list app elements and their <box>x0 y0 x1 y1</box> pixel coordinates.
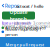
button[interactable]: Merge pull request <box>0 37 50 47</box>
staticText: into main · 3 commits <box>14 20 50 25</box>
staticText: Repos <box>5 2 20 9</box>
button[interactable]: Update branch <box>2 11 35 19</box>
staticText: Merge pull request <box>5 42 44 47</box>
staticText: Update branch <box>9 8 27 23</box>
button[interactable]: All checks have passed <box>1 26 47 30</box>
staticText: octocat / hello <box>16 4 43 9</box>
button[interactable]: Repos <box>2 3 20 9</box>
staticText: Opened 2 days ago by octocat <box>1 23 50 29</box>
button[interactable]: Review required by 1 person <box>1 30 47 34</box>
staticText: Review required by 1 person <box>5 26 41 37</box>
staticText: All checks have passed <box>5 25 45 30</box>
staticText: feature-branch <box>1 20 31 25</box>
